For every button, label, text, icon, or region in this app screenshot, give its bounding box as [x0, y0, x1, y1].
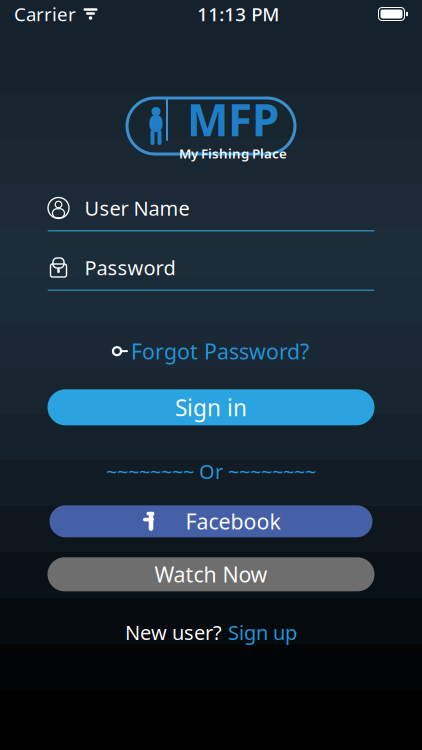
- button[interactable]: Facebook: [49, 505, 372, 537]
- button[interactable]: Sign up: [228, 619, 297, 646]
- staticText: Forgot Password?: [131, 337, 309, 365]
- staticText: Sign in: [175, 392, 247, 422]
- staticText: Password: [84, 254, 175, 281]
- staticText: Carrier: [14, 2, 76, 26]
- staticText: My Fishing Place: [179, 144, 287, 162]
- button[interactable]: Sign in: [47, 389, 374, 425]
- staticText: 11:13 PM: [197, 2, 279, 26]
- staticText: Facebook: [185, 507, 280, 535]
- button[interactable]: Forgot Password?: [103, 333, 319, 369]
- button[interactable]: Watch Now: [47, 557, 374, 591]
- staticText: User Name: [84, 195, 189, 221]
- staticText: Watch Now: [154, 560, 267, 588]
- staticText: New user?: [125, 619, 222, 646]
- staticText: Sign up: [228, 619, 297, 646]
- staticText: MFP: [187, 90, 279, 148]
- staticText: ~~~~~~~~ Or ~~~~~~~~: [106, 458, 316, 485]
